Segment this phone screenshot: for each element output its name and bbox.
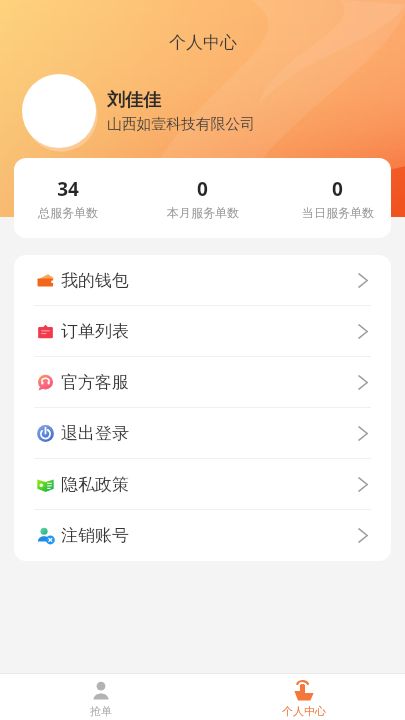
button[interactable]: 注销账号 [14, 510, 391, 561]
staticText: 山西如壹科技有限公司 [107, 115, 255, 134]
button[interactable]: 个人中心 [202, 681, 405, 718]
staticText: 订单列表 [61, 321, 129, 342]
button[interactable]: 订单列表 [14, 306, 391, 357]
button[interactable]: 退出登录 [14, 408, 391, 459]
staticText: 我的钱包 [61, 270, 129, 291]
staticText: 刘佳佳 [107, 89, 161, 112]
staticText: 0 [332, 176, 343, 202]
button[interactable]: 抢单 [0, 681, 202, 718]
staticText: 抢单 [90, 704, 112, 718]
staticText: 当日服务单数 [302, 205, 374, 220]
staticText: 个人中心 [282, 704, 326, 718]
staticText: 注销账号 [61, 525, 129, 546]
staticText: 本月服务单数 [167, 205, 239, 220]
staticText: 0 [197, 176, 208, 202]
staticText: 退出登录 [61, 423, 129, 444]
staticText: 总服务单数 [38, 205, 98, 220]
staticText: 隐私政策 [61, 474, 129, 495]
staticText: 34 [57, 176, 79, 202]
staticText: 个人中心 [169, 32, 237, 53]
button[interactable]: 我的钱包 [14, 255, 391, 306]
button[interactable]: 官方客服 [14, 357, 391, 408]
button[interactable]: 隐私政策 [14, 459, 391, 510]
staticText: 官方客服 [61, 372, 129, 393]
